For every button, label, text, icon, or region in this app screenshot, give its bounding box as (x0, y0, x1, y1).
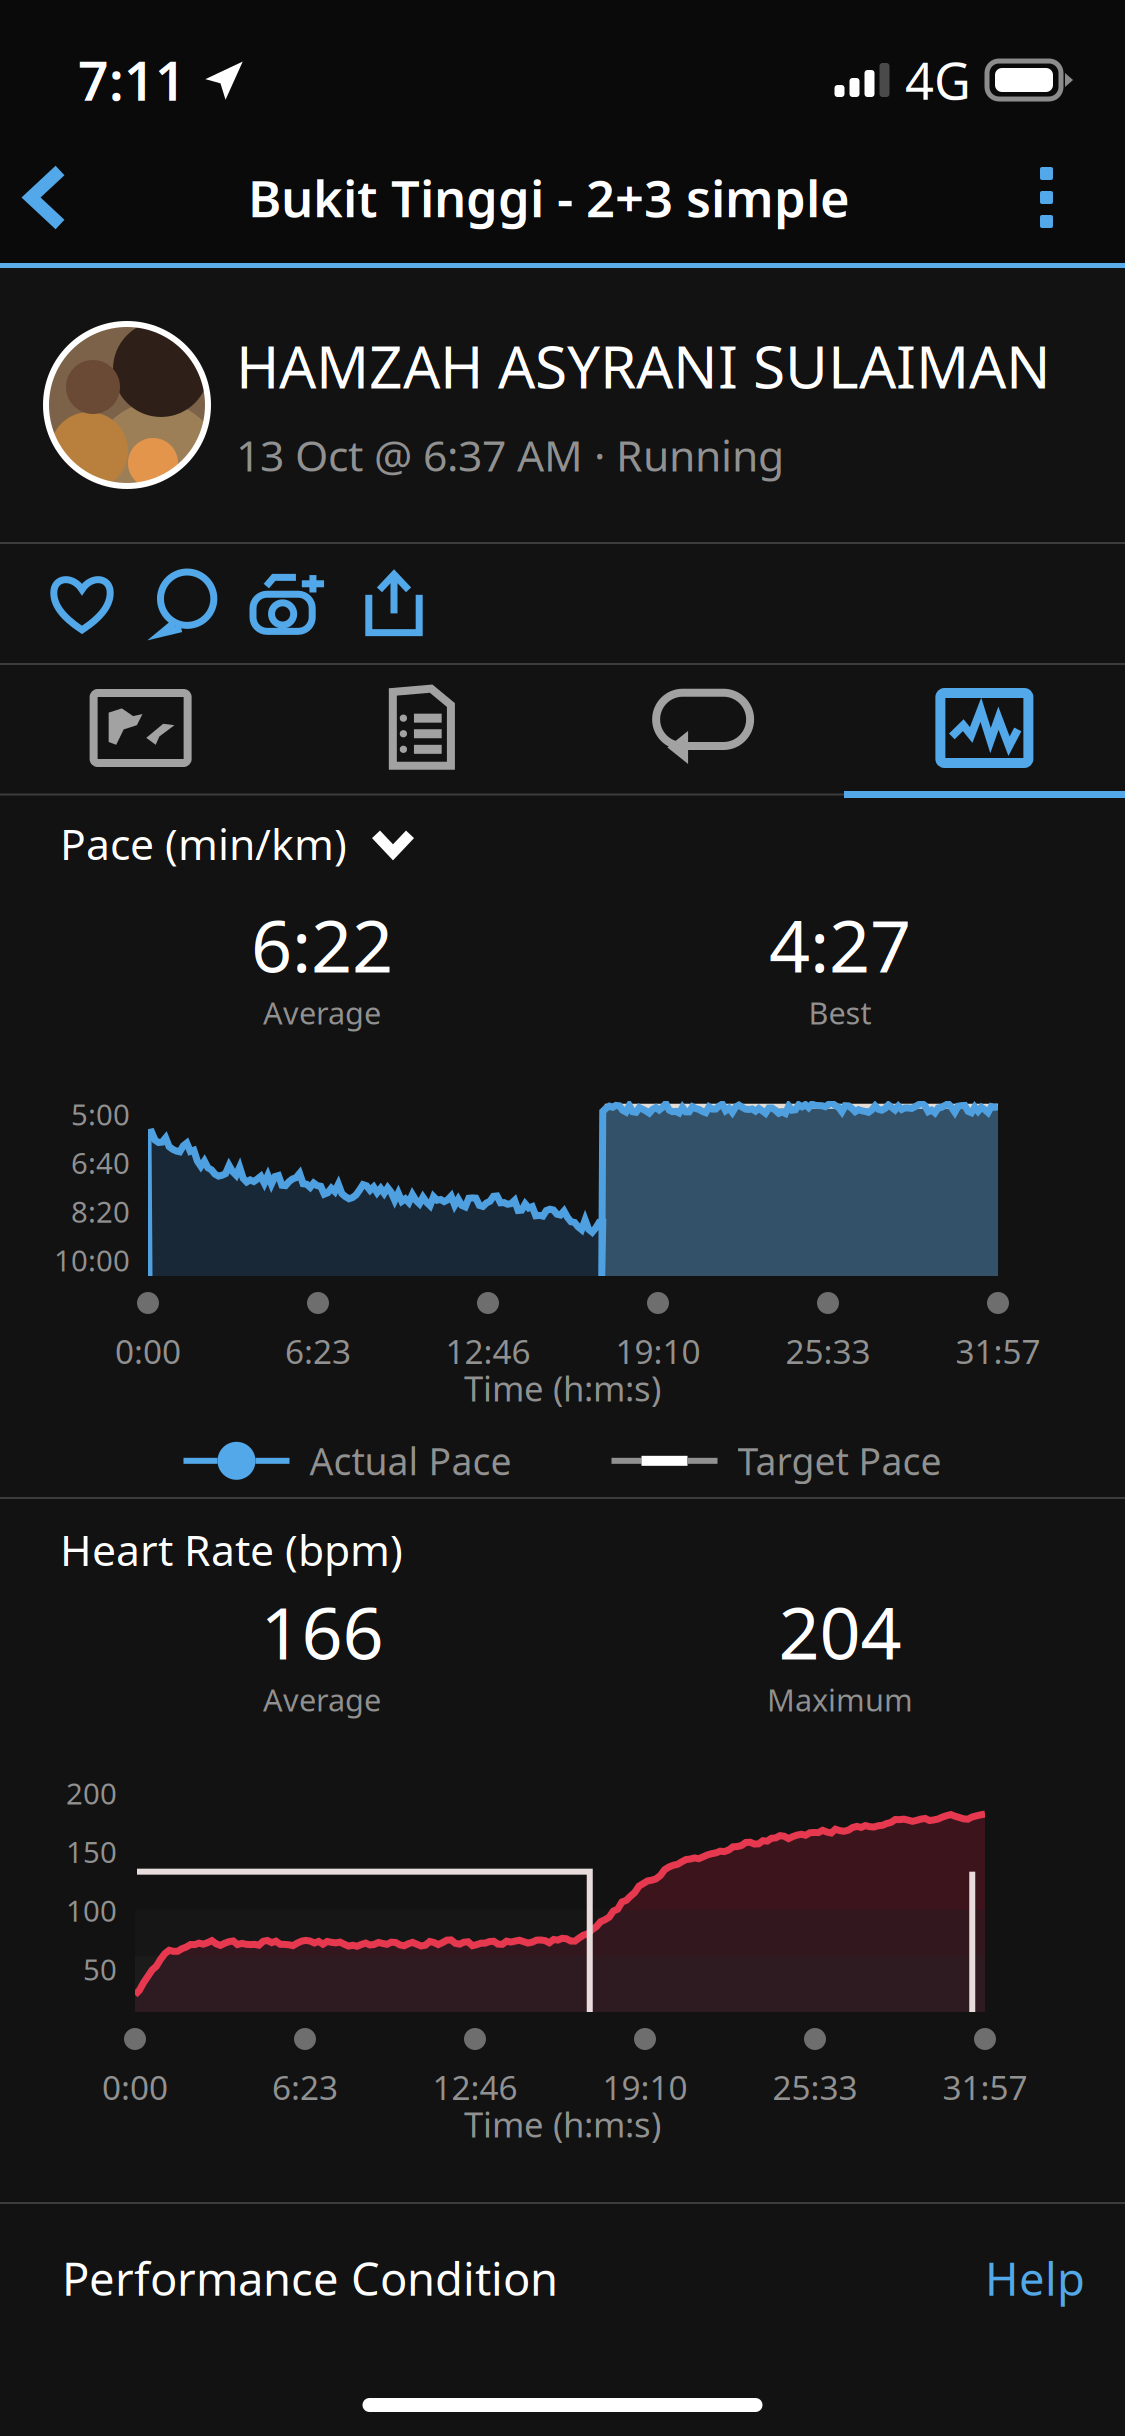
button[interactable]: Charts (844, 665, 1125, 791)
button[interactable]: Comment (134, 544, 238, 662)
staticText: Time (h:m:s) (464, 1365, 661, 1411)
staticText: 204 (778, 1584, 901, 1679)
staticText: 25:33 (772, 2065, 857, 2109)
button[interactable]: More options (992, 133, 1125, 262)
staticText: 19:10 (602, 2065, 687, 2109)
staticText: Heart Rate (bpm) (60, 1521, 403, 1578)
staticText: Maximum (767, 1679, 913, 1720)
staticText: Time (h:m:s) (464, 2101, 661, 2147)
button[interactable]: Map (0, 665, 281, 791)
staticText: 50 (83, 1949, 117, 1988)
staticText: Average (263, 1679, 381, 1720)
button[interactable]: Help (985, 2248, 1085, 2308)
staticText: 6:22 (251, 897, 393, 992)
staticText: 19:10 (615, 1329, 700, 1373)
staticText: 8:20 (71, 1192, 130, 1231)
staticText: HAMZAH ASYRANI SULAIMAN (236, 327, 1051, 405)
staticText: 13 Oct @ 6:37 AM · Running (236, 427, 784, 483)
staticText: 12:46 (445, 1329, 530, 1373)
staticText: 200 (66, 1773, 117, 1812)
staticText: 100 (66, 1891, 117, 1930)
staticText: 4:27 (769, 897, 911, 992)
button[interactable]: Share (342, 544, 446, 662)
staticText: 7:11 (78, 45, 186, 115)
staticText: Best (808, 992, 871, 1033)
staticText: Help (985, 2248, 1085, 2308)
button[interactable]: Splits (281, 665, 562, 791)
button[interactable]: Like (30, 544, 134, 662)
staticText: Actual Pace (309, 1436, 511, 1486)
staticText: 6:23 (285, 1329, 351, 1373)
staticText: 166 (260, 1584, 383, 1679)
staticText: 12:46 (432, 2065, 517, 2109)
staticText: 5:00 (71, 1094, 130, 1133)
button[interactable]: Add photo (238, 544, 342, 662)
staticText: 0:00 (102, 2065, 168, 2109)
button[interactable]: Laps (562, 665, 844, 791)
staticText: 150 (66, 1832, 117, 1871)
staticText: Pace (min/km) (60, 815, 347, 872)
button[interactable]: Back (0, 134, 106, 260)
staticText: 4G (905, 46, 971, 114)
staticText: 6:40 (71, 1143, 130, 1182)
staticText: Performance Condition (62, 2248, 558, 2308)
staticText: Target Pace (737, 1436, 941, 1486)
staticText: 0:00 (115, 1329, 181, 1373)
staticText: 31:57 (942, 2065, 1027, 2109)
staticText: 10:00 (54, 1240, 130, 1279)
staticText: 6:23 (272, 2065, 338, 2109)
staticText: 31:57 (955, 1329, 1040, 1373)
staticText: Bukit Tinggi - 2+3 simple (248, 164, 850, 231)
staticText: Average (263, 992, 381, 1033)
staticText: 25:33 (785, 1329, 870, 1373)
